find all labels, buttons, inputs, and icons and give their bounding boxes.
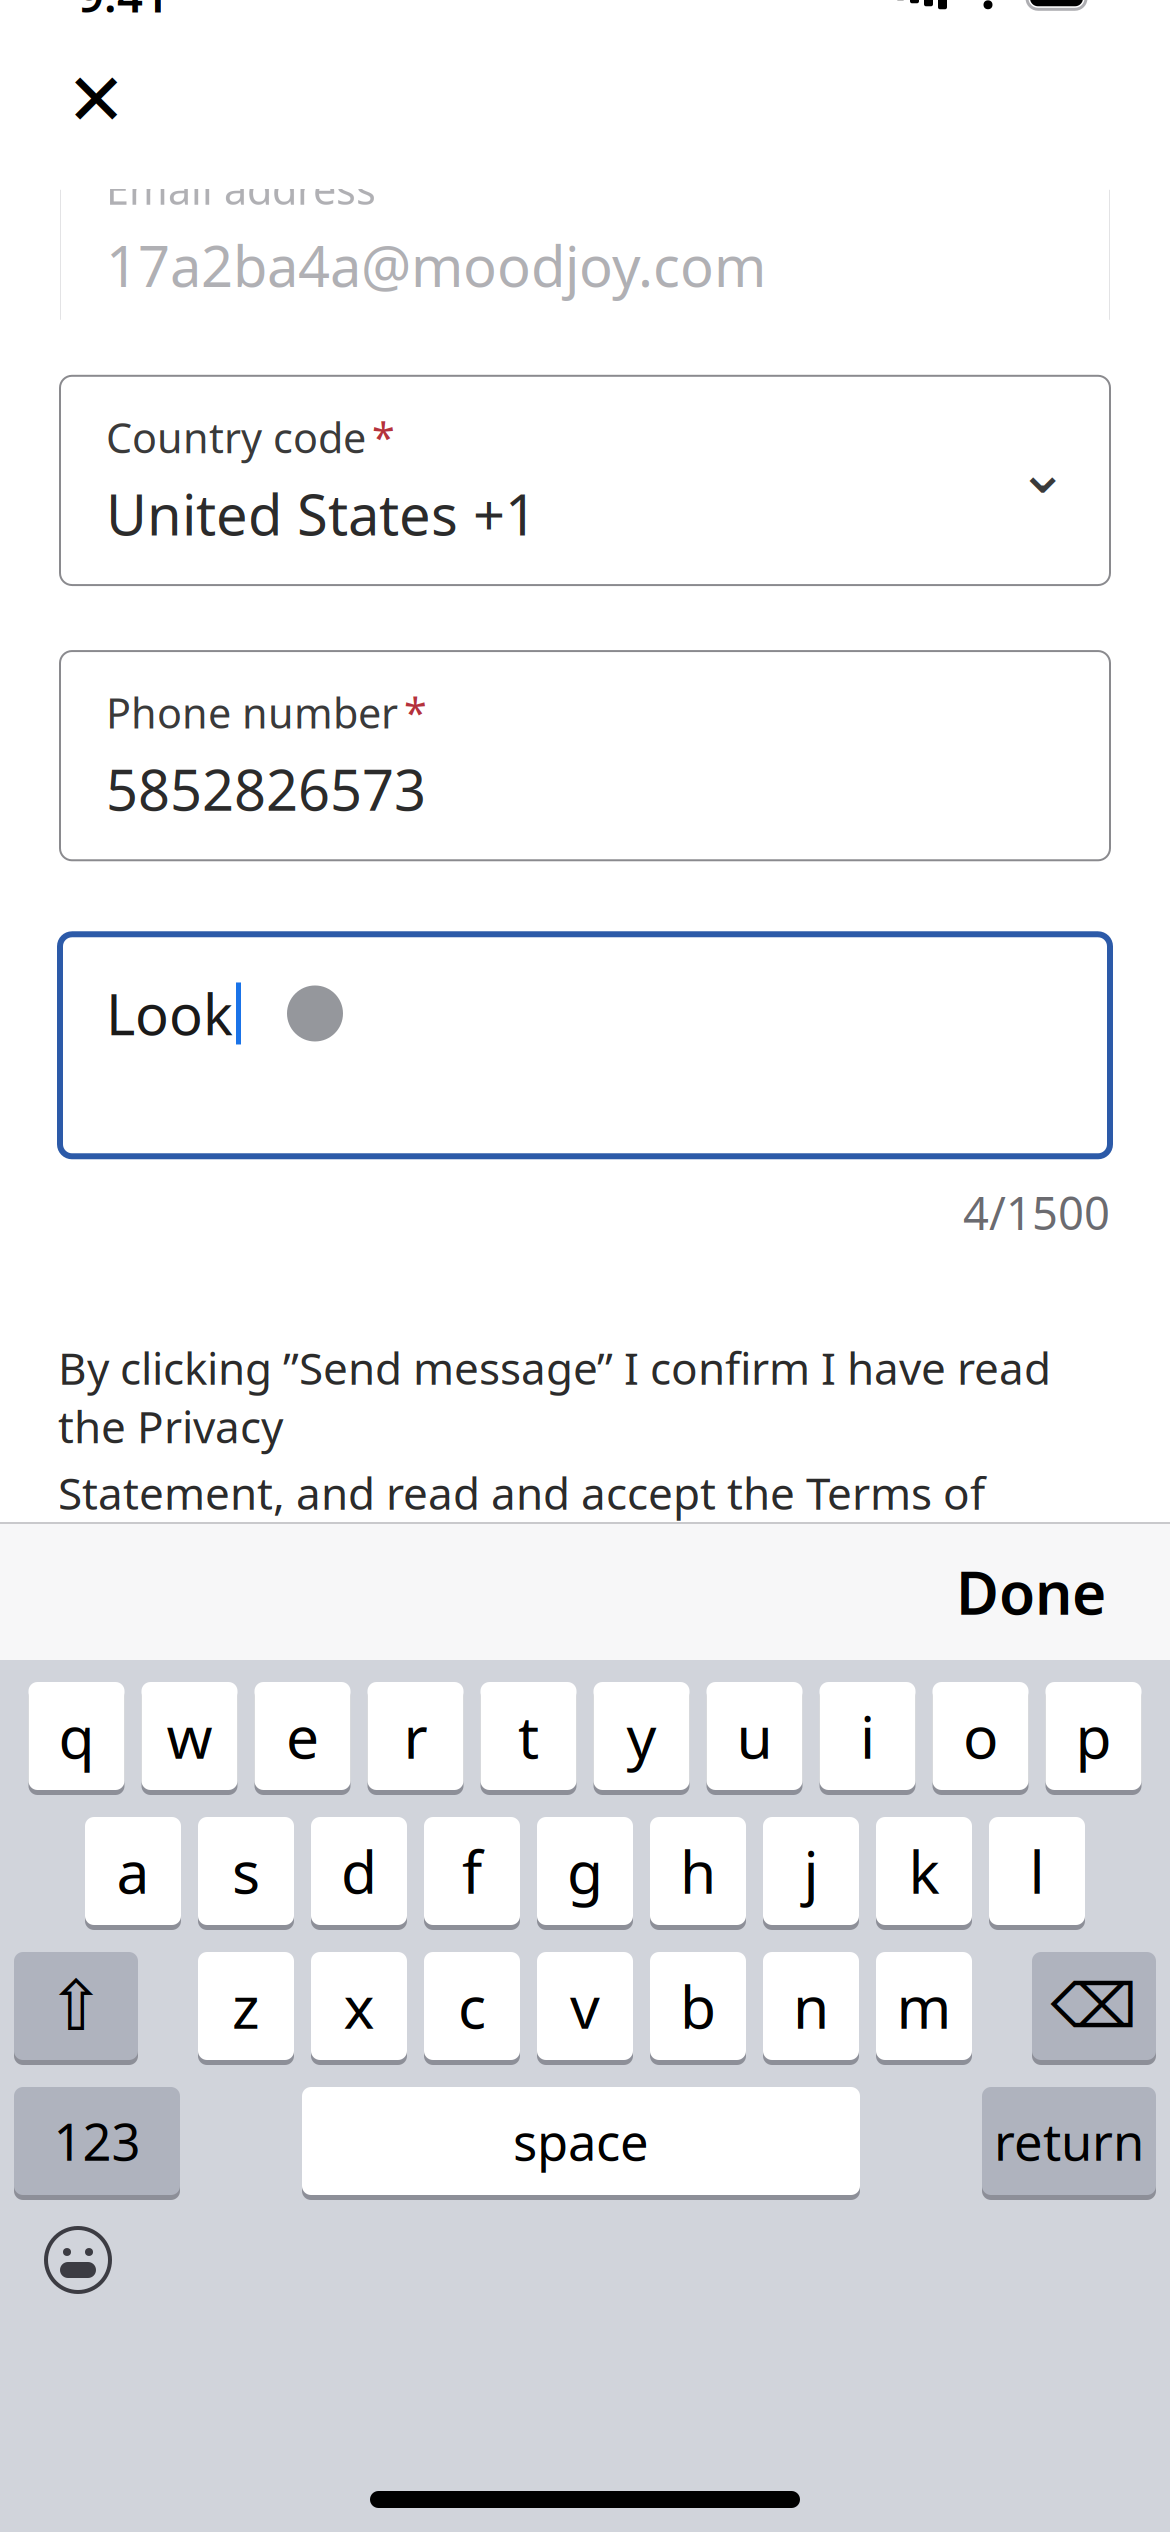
button[interactable]: m [876,1952,972,2065]
staticText: b [680,1967,716,2045]
staticText: x [343,1967,374,2045]
staticText: c [458,1967,486,2045]
staticText: o [963,1697,998,1775]
staticText: i [860,1697,875,1775]
staticText: 17a2ba4a@moodjoy.com [106,228,766,302]
staticText: United States +1 [106,477,537,551]
button[interactable]: Phone number [60,651,1110,860]
button[interactable]: i [819,1682,915,1795]
staticText: a [116,1832,149,1910]
staticText: r [403,1697,427,1775]
staticText: e [286,1697,319,1775]
button[interactable]: w [141,1682,237,1795]
staticText: ⌫ [1050,1971,1137,2041]
button[interactable]: v [537,1952,633,2065]
button[interactable]: n [763,1952,859,2065]
staticText: s [232,1832,260,1910]
button[interactable]: space [302,2087,860,2200]
staticText: Look [106,976,233,1051]
button[interactable]: j [763,1817,859,1930]
staticText: g [567,1832,603,1910]
button[interactable]: Close [48,52,144,148]
button[interactable]: c [424,1952,520,2065]
staticText: j [803,1832,818,1910]
button[interactable]: s [198,1817,294,1930]
staticText: d [341,1832,377,1910]
button[interactable]: Shift [14,1952,138,2065]
button[interactable]: Delete [1032,1952,1156,2065]
button[interactable]: a [85,1817,181,1930]
staticText: v [570,1967,600,2045]
button[interactable]: g [537,1817,633,1930]
staticText: l [1029,1832,1044,1910]
button[interactable]: return [982,2087,1156,2200]
staticText: return [994,2107,1144,2175]
button[interactable]: 123 [14,2087,180,2200]
staticText: f [462,1832,482,1910]
button[interactable]: y [593,1682,689,1795]
staticText: ⌄ [1017,437,1068,506]
staticText: t [518,1697,539,1775]
staticText: Country code [106,410,366,465]
staticText: w [166,1697,212,1775]
staticText: m [896,1967,951,2045]
staticText: 123 [53,2107,140,2175]
staticText: By clicking ”Send message” I confirm I h… [58,1338,1051,1455]
button[interactable]: z [198,1952,294,2065]
button[interactable]: q [28,1682,124,1795]
button[interactable]: k [876,1817,972,1930]
staticText: * [404,685,427,740]
button[interactable]: r [367,1682,463,1795]
button[interactable]: Email address [60,127,1110,336]
staticText: 9:41 [78,0,169,25]
button[interactable]: Done [928,1537,1134,1647]
button[interactable]: f [424,1817,520,1930]
staticText: k [908,1832,939,1910]
staticText: h [680,1832,716,1910]
button[interactable]: e [254,1682,350,1795]
staticText: y [626,1697,656,1775]
button[interactable]: Emoji keyboard [32,2214,124,2306]
button[interactable]: h [650,1817,746,1930]
button[interactable]: x [311,1952,407,2065]
button[interactable]: Look [60,934,1110,1156]
button[interactable]: l [989,1817,1085,1930]
staticText: z [232,1967,260,2045]
staticText: Statement, and read and accept the Terms… [58,1463,985,1580]
staticText: * [372,410,395,465]
button[interactable]: t [480,1682,576,1795]
button[interactable]: Country code [60,376,1110,585]
staticText: 4/1500 [963,1182,1110,1242]
staticText: n [793,1967,829,2045]
button[interactable]: o [932,1682,1028,1795]
staticText: u [736,1697,772,1775]
staticText: Phone number [106,685,398,740]
button[interactable]: u [706,1682,802,1795]
staticText: Email address [106,161,376,216]
staticText: ⇧ [47,1967,105,2045]
staticText: p [1075,1697,1111,1775]
staticText: 5852826573 [106,752,426,826]
staticText: q [58,1697,94,1775]
button[interactable]: b [650,1952,746,2065]
staticText: ✕ [66,59,126,141]
staticText: Done [956,1553,1106,1631]
button[interactable]: d [311,1817,407,1930]
button[interactable]: p [1045,1682,1141,1795]
staticText: space [513,2107,649,2175]
